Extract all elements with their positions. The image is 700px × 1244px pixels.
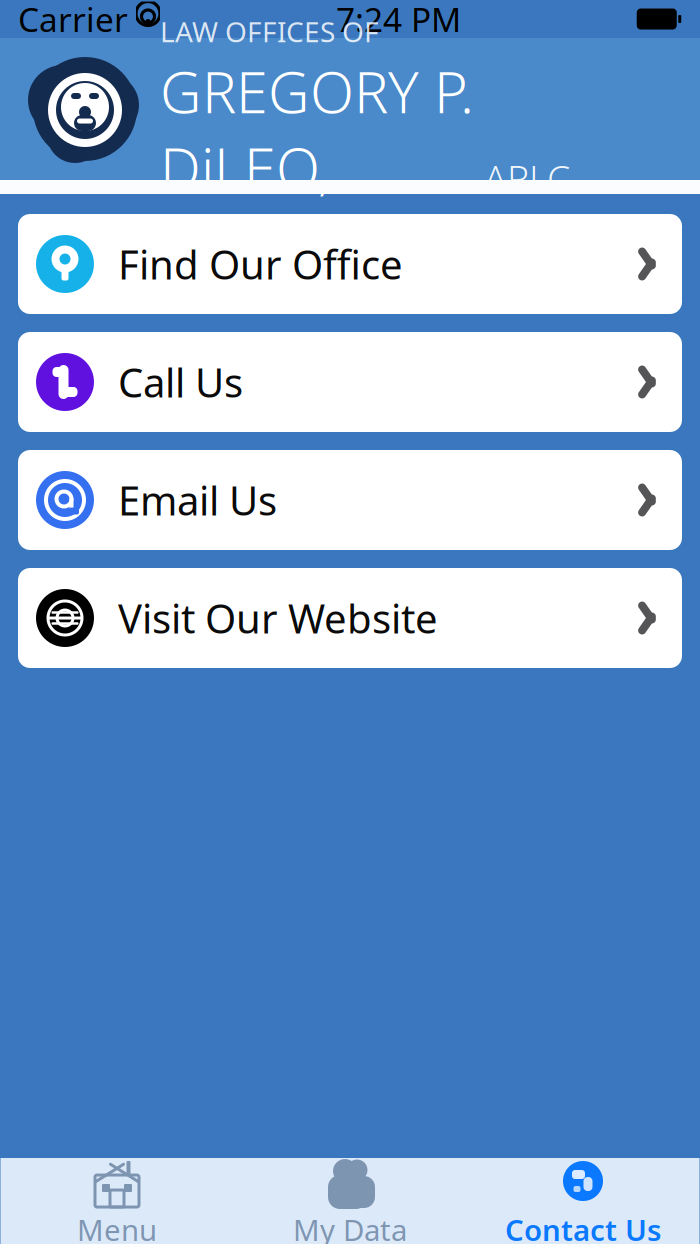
button[interactable]: My Data <box>233 1158 466 1244</box>
staticText: 7:24 PM <box>336 0 461 41</box>
staticText: APLC <box>474 153 570 202</box>
staticText: Email Us <box>118 473 277 526</box>
button[interactable]: Contact Us <box>466 1158 699 1244</box>
staticText: My Data <box>293 1210 407 1244</box>
staticText: GREGORY P. DiLEO, <box>160 53 474 205</box>
staticText: Find Our Office <box>118 237 403 290</box>
staticText: Menu <box>77 1210 157 1244</box>
button[interactable]: Email Us <box>18 450 682 550</box>
button[interactable]: Find Our Office <box>18 214 682 314</box>
button[interactable]: Menu <box>0 1158 233 1244</box>
staticText: LAW OFFICES OF <box>160 13 379 50</box>
staticText: Call Us <box>118 355 243 408</box>
staticText: Contact Us <box>505 1210 661 1244</box>
staticText: Carrier <box>18 0 128 41</box>
button[interactable]: Visit Our Website <box>18 568 682 668</box>
staticText: Visit Our Website <box>118 591 438 644</box>
button[interactable]: Call Us <box>18 332 682 432</box>
